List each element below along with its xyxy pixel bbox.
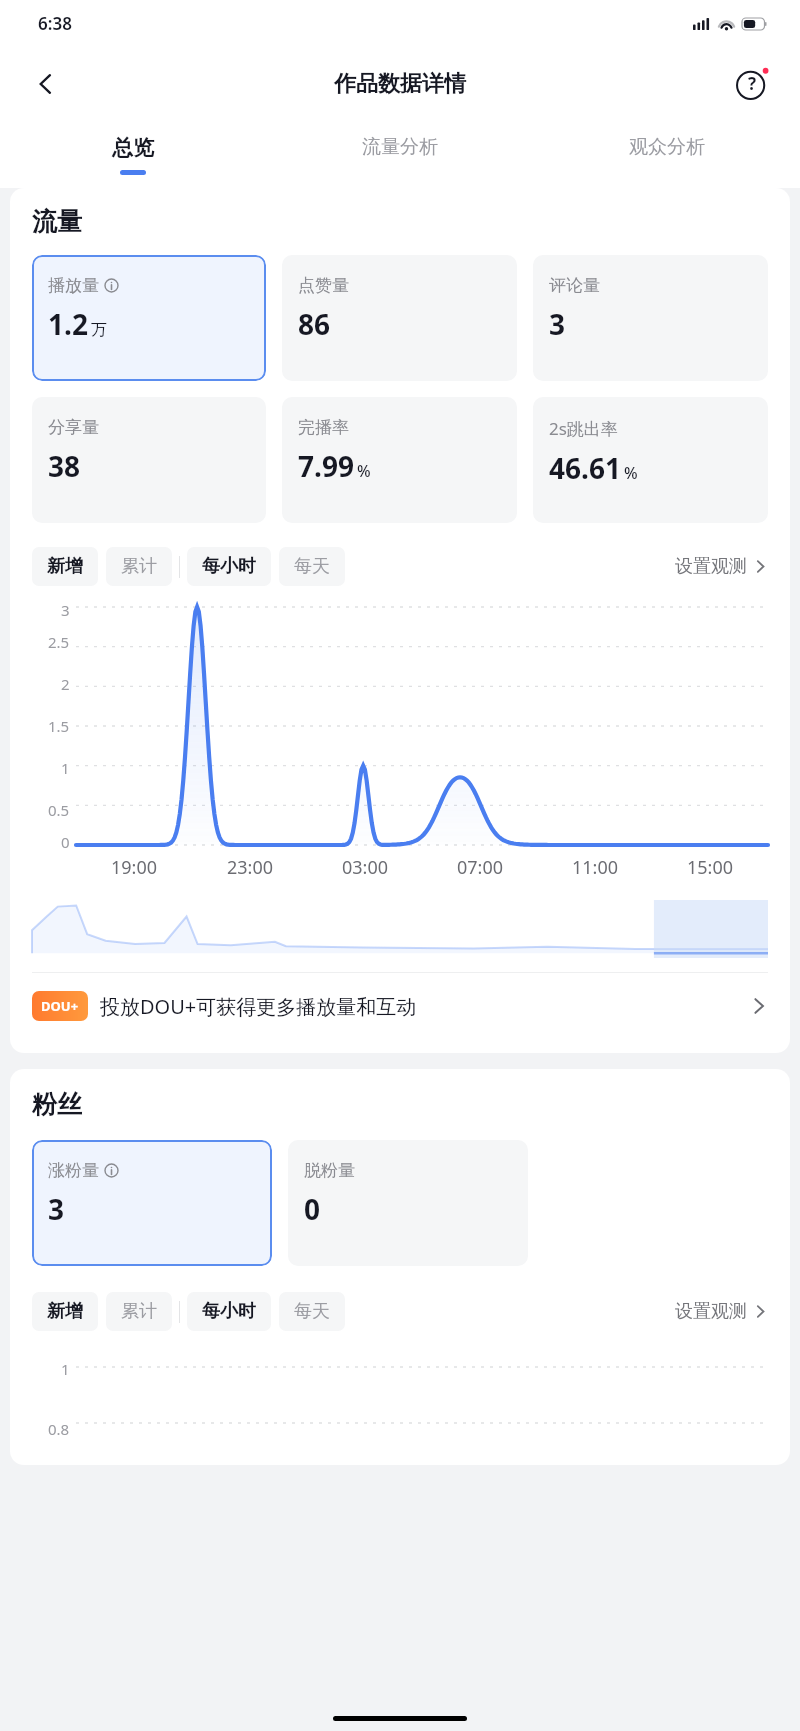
staticText: 3 — [48, 1190, 65, 1228]
button[interactable]: DOU+ — [10, 973, 790, 1039]
staticText: 观众分析 — [629, 135, 705, 159]
staticText: 累计 — [121, 1300, 157, 1323]
staticText: 0 — [61, 832, 70, 852]
staticText: 涨粉量 — [48, 1160, 99, 1181]
button[interactable]: 播放量 — [32, 255, 266, 381]
staticText: 流量分析 — [362, 135, 438, 159]
staticText: 3 — [61, 600, 70, 620]
staticText: 作品数据详情 — [334, 70, 466, 98]
staticText: 0 — [304, 1190, 321, 1228]
staticText: 15:00 — [687, 855, 734, 880]
staticText: 新增 — [47, 555, 83, 578]
button[interactable]: 每天 — [279, 547, 345, 586]
staticText: 1 — [61, 758, 70, 778]
staticText: 万 — [91, 320, 107, 340]
staticText: 03:00 — [342, 855, 389, 880]
button[interactable]: 设置观测 — [675, 555, 768, 578]
staticText: 38 — [48, 447, 81, 485]
staticText: 2.5 — [48, 632, 70, 652]
staticText: 脱粉量 — [304, 1160, 355, 1181]
staticText: 分享量 — [48, 417, 99, 438]
staticText: 2s跳出率 — [549, 417, 618, 440]
staticText: 流量 — [32, 206, 82, 237]
button[interactable]: Back — [24, 62, 68, 106]
staticText: 评论量 — [549, 275, 600, 296]
staticText: DOU+ — [41, 997, 79, 1015]
staticText: 每小时 — [202, 1300, 256, 1323]
button[interactable]: 观众分析 — [533, 121, 800, 188]
staticText: 0.5 — [48, 800, 70, 820]
staticText: 86 — [298, 305, 331, 343]
staticText: 1 — [61, 1359, 70, 1379]
staticText: 11:00 — [572, 855, 619, 880]
button[interactable]: 流量分析 — [266, 121, 533, 188]
button[interactable]: 累计 — [106, 1292, 172, 1331]
button[interactable]: 新增 — [32, 547, 98, 586]
staticText: 点赞量 — [298, 275, 349, 296]
staticText: 46.61 — [549, 449, 621, 487]
staticText: 2 — [61, 674, 70, 694]
staticText: 设置观测 — [675, 555, 747, 578]
staticText: 新增 — [47, 1300, 83, 1323]
staticText: 23:00 — [227, 855, 274, 880]
staticText: 完播率 — [298, 417, 349, 438]
staticText: 投放DOU+可获得更多播放量和互动 — [100, 993, 417, 1020]
button[interactable]: 每小时 — [187, 547, 271, 586]
button[interactable]: 评论量 — [533, 255, 768, 381]
staticText: 19:00 — [111, 855, 158, 880]
staticText: % — [624, 462, 638, 484]
staticText: 总览 — [112, 135, 154, 161]
staticText: 6:38 — [38, 12, 72, 35]
staticText: 每天 — [294, 555, 330, 578]
button[interactable]: 每天 — [279, 1292, 345, 1331]
staticText: 播放量 — [48, 275, 99, 296]
button[interactable]: 每小时 — [187, 1292, 271, 1331]
button[interactable]: 完播率 — [282, 397, 517, 523]
button[interactable]: 分享量 — [32, 397, 266, 523]
staticText: 0.8 — [48, 1419, 70, 1439]
staticText: ? — [748, 72, 757, 95]
button[interactable]: 脱粉量 — [288, 1140, 528, 1266]
button[interactable]: 2s跳出率 — [533, 397, 768, 523]
button[interactable]: 累计 — [106, 547, 172, 586]
staticText: 7.99 — [298, 447, 354, 485]
staticText: 07:00 — [457, 855, 504, 880]
staticText: 累计 — [121, 555, 157, 578]
staticText: 粉丝 — [32, 1089, 82, 1120]
button[interactable]: 涨粉量 — [32, 1140, 272, 1266]
staticText: 3 — [549, 305, 566, 343]
staticText: 每天 — [294, 1300, 330, 1323]
button[interactable]: 总览 — [0, 121, 266, 188]
staticText: 1.2 — [48, 305, 88, 343]
button[interactable]: 新增 — [32, 1292, 98, 1331]
button[interactable]: 点赞量 — [282, 255, 517, 381]
staticText: % — [357, 460, 371, 482]
staticText: 设置观测 — [675, 1300, 747, 1323]
button[interactable]: 设置观测 — [675, 1300, 768, 1323]
staticText: 每小时 — [202, 555, 256, 578]
staticText: 1.5 — [48, 716, 70, 736]
button[interactable]: Help — [730, 62, 774, 106]
